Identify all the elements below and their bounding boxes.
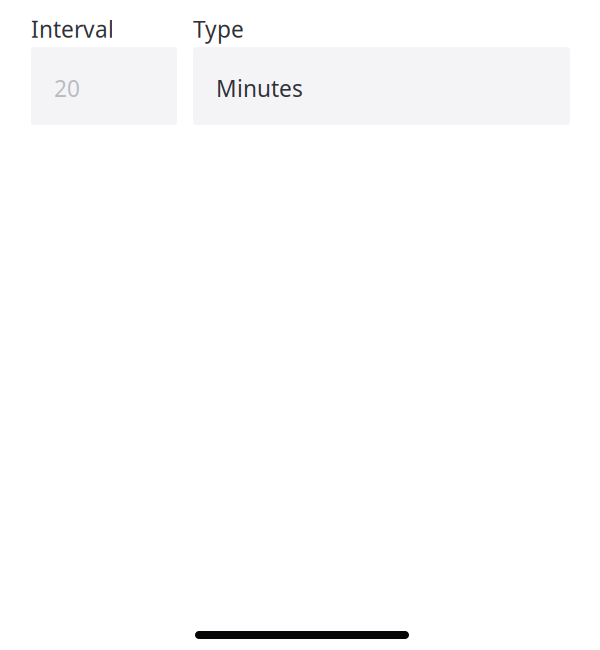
staticText: 20	[54, 73, 80, 103]
staticText: Type	[193, 14, 244, 44]
staticText: Minutes	[216, 73, 303, 103]
staticText: Interval	[31, 14, 114, 44]
button[interactable]: Type	[193, 47, 570, 125]
button[interactable]: Interval	[31, 47, 177, 125]
